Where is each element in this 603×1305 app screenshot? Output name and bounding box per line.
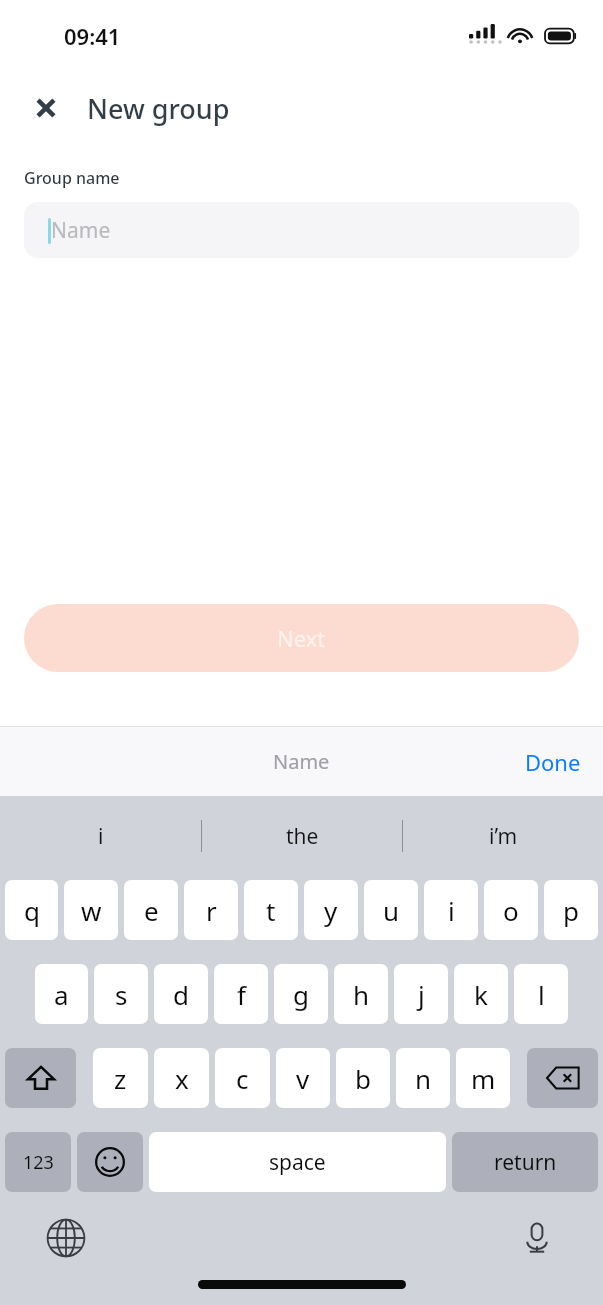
button[interactable]: r	[184, 880, 238, 940]
staticText: 09:41	[64, 21, 121, 51]
staticText: d	[173, 977, 189, 1012]
button[interactable]: Dictation	[511, 1212, 563, 1264]
staticText: v	[296, 1061, 310, 1096]
button[interactable]: y	[304, 880, 358, 940]
button[interactable]: d	[154, 964, 208, 1024]
button[interactable]: a	[35, 964, 88, 1024]
staticText: s	[115, 977, 128, 1012]
button[interactable]: j	[394, 964, 448, 1024]
button[interactable]: u	[364, 880, 418, 940]
button[interactable]: the	[202, 796, 402, 876]
button[interactable]: h	[334, 964, 388, 1024]
staticText: Name	[273, 748, 330, 775]
staticText: n	[415, 1061, 432, 1096]
button[interactable]: Close	[26, 88, 66, 128]
staticText: m	[471, 1061, 496, 1096]
button[interactable]: z	[93, 1048, 148, 1108]
staticText: c	[236, 1061, 249, 1096]
button[interactable]: return	[452, 1132, 598, 1192]
staticText: the	[286, 822, 319, 851]
staticText: Name	[51, 216, 111, 245]
button[interactable]: q	[5, 880, 58, 940]
button[interactable]: i	[424, 880, 478, 940]
button[interactable]: Change keyboard	[40, 1212, 92, 1264]
staticText: i	[98, 822, 104, 851]
staticText: New group	[87, 90, 230, 127]
staticText: l	[538, 977, 545, 1012]
button[interactable]: n	[396, 1048, 450, 1108]
button[interactable]: i’m	[403, 796, 603, 876]
staticText: f	[237, 977, 246, 1012]
button[interactable]: Backspace	[527, 1048, 598, 1108]
staticText: return	[494, 1148, 557, 1177]
staticText: 123	[23, 1150, 54, 1175]
button[interactable]: Shift	[5, 1048, 76, 1108]
staticText: Done	[525, 747, 581, 777]
button[interactable]: i	[0, 796, 201, 876]
staticText: g	[293, 977, 309, 1012]
staticText: i	[448, 893, 455, 928]
staticText: u	[383, 893, 400, 928]
button[interactable]: v	[276, 1048, 330, 1108]
button[interactable]: g	[274, 964, 328, 1024]
staticText: h	[353, 977, 370, 1012]
staticText: w	[81, 893, 102, 928]
button[interactable]: Name	[24, 202, 579, 258]
staticText: y	[324, 893, 338, 928]
staticText: j	[418, 977, 425, 1012]
staticText: z	[114, 1061, 127, 1096]
button[interactable]: k	[454, 964, 508, 1024]
button[interactable]: m	[456, 1048, 510, 1108]
staticText: t	[266, 893, 276, 928]
staticText: b	[355, 1061, 371, 1096]
button[interactable]: b	[336, 1048, 390, 1108]
staticText: a	[54, 977, 69, 1012]
button[interactable]: t	[244, 880, 298, 940]
button[interactable]: Done	[503, 737, 603, 787]
button[interactable]: w	[64, 880, 118, 940]
button[interactable]: space	[149, 1132, 446, 1192]
staticText: k	[474, 977, 488, 1012]
staticText: q	[24, 893, 40, 928]
button[interactable]: Emoji	[77, 1132, 143, 1192]
staticText: i’m	[489, 822, 518, 851]
button[interactable]: c	[215, 1048, 270, 1108]
button[interactable]: f	[214, 964, 268, 1024]
staticText: e	[144, 893, 159, 928]
staticText: r	[206, 893, 217, 928]
button[interactable]: l	[514, 964, 568, 1024]
button[interactable]: x	[154, 1048, 209, 1108]
staticText: Next	[277, 623, 326, 653]
staticText: space	[269, 1148, 326, 1177]
button[interactable]: 123	[5, 1132, 71, 1192]
button[interactable]: e	[124, 880, 178, 940]
staticText: x	[175, 1061, 189, 1096]
button[interactable]: p	[544, 880, 598, 940]
button[interactable]: s	[94, 964, 148, 1024]
button[interactable]: Next	[24, 604, 579, 672]
staticText: o	[503, 893, 519, 928]
button[interactable]: o	[484, 880, 538, 940]
staticText: Group name	[24, 167, 120, 189]
staticText: p	[563, 893, 579, 928]
